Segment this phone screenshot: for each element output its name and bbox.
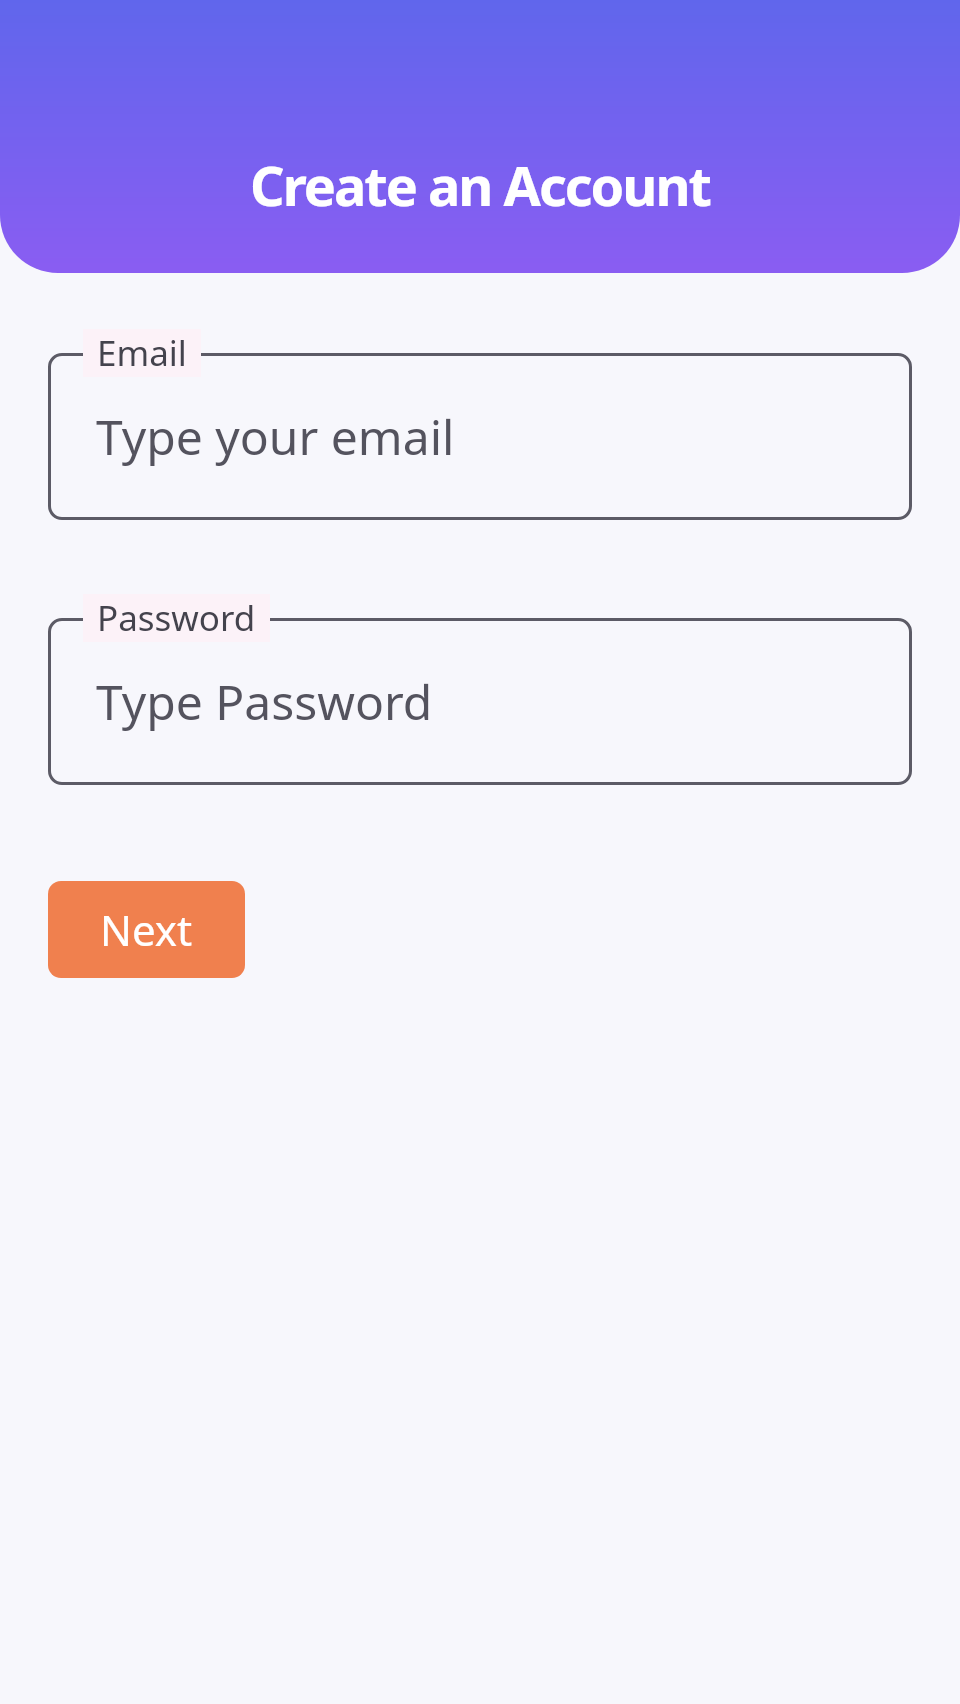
staticText: Next xyxy=(100,901,193,958)
staticText: Type your email xyxy=(96,404,455,469)
staticText: Email xyxy=(97,329,187,377)
button[interactable]: Type Password xyxy=(48,618,912,785)
button[interactable]: Type your email xyxy=(48,353,912,520)
staticText: Create an Account xyxy=(250,148,710,222)
button[interactable]: Next xyxy=(48,881,245,978)
staticText: Type Password xyxy=(96,669,433,734)
staticText: Password xyxy=(97,594,256,642)
